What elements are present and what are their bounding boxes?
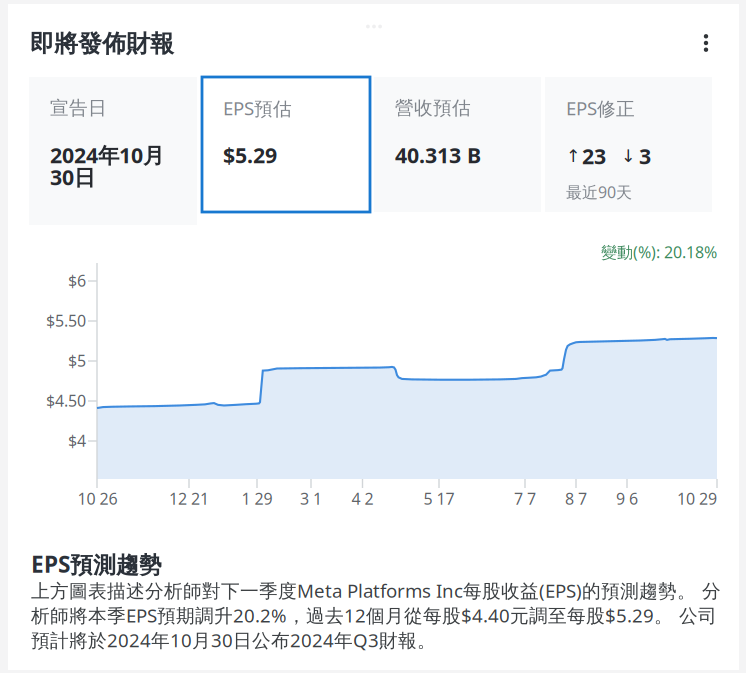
staticText: 30日 bbox=[50, 163, 95, 191]
staticText: 7 7 bbox=[514, 488, 536, 509]
button[interactable]: More options bbox=[684, 21, 728, 65]
staticText: $5 bbox=[68, 350, 86, 371]
staticText: EPS修正 bbox=[566, 96, 635, 120]
staticText: 即將發佈財報 bbox=[30, 29, 174, 58]
staticText: $6 bbox=[68, 270, 86, 291]
staticText: 3 bbox=[639, 142, 651, 170]
staticText: $5.50 bbox=[46, 310, 86, 331]
staticText: 8 7 bbox=[565, 488, 587, 509]
staticText: 40.313 B bbox=[395, 141, 481, 169]
staticText: 10 29 bbox=[677, 488, 717, 509]
staticText: 3 1 bbox=[300, 488, 322, 509]
staticText: 23 bbox=[582, 142, 606, 170]
staticText: 上方圖表描述分析師對下一季度Meta Platforms Inc每股收益(EPS… bbox=[31, 578, 721, 652]
staticText: ↑ bbox=[566, 146, 581, 166]
staticText: 5 17 bbox=[423, 488, 454, 509]
staticText: 最近90天 bbox=[566, 181, 632, 203]
staticText: 10 26 bbox=[77, 488, 117, 509]
staticText: 宣告日 bbox=[50, 96, 107, 119]
staticText: $5.29 bbox=[223, 141, 277, 169]
staticText: 變動(%): 20.18% bbox=[601, 241, 717, 263]
button[interactable]: EPS預估 bbox=[202, 77, 370, 212]
staticText: 2024年10月 bbox=[50, 141, 164, 169]
button[interactable]: 營收預估 bbox=[374, 77, 541, 212]
staticText: $4.50 bbox=[46, 390, 86, 411]
staticText: 9 6 bbox=[616, 488, 638, 509]
staticText: EPS預估 bbox=[223, 96, 292, 120]
button[interactable]: EPS修正 bbox=[545, 77, 712, 212]
staticText: $4 bbox=[68, 430, 86, 451]
staticText: 12 21 bbox=[169, 488, 209, 509]
staticText: 4 2 bbox=[351, 488, 373, 509]
staticText: 1 29 bbox=[241, 488, 272, 509]
button[interactable]: 宣告日 bbox=[29, 77, 197, 225]
staticText: ↓ bbox=[621, 146, 636, 166]
staticText: 營收預估 bbox=[395, 96, 471, 119]
staticText: EPS預測趨勢 bbox=[31, 549, 162, 579]
